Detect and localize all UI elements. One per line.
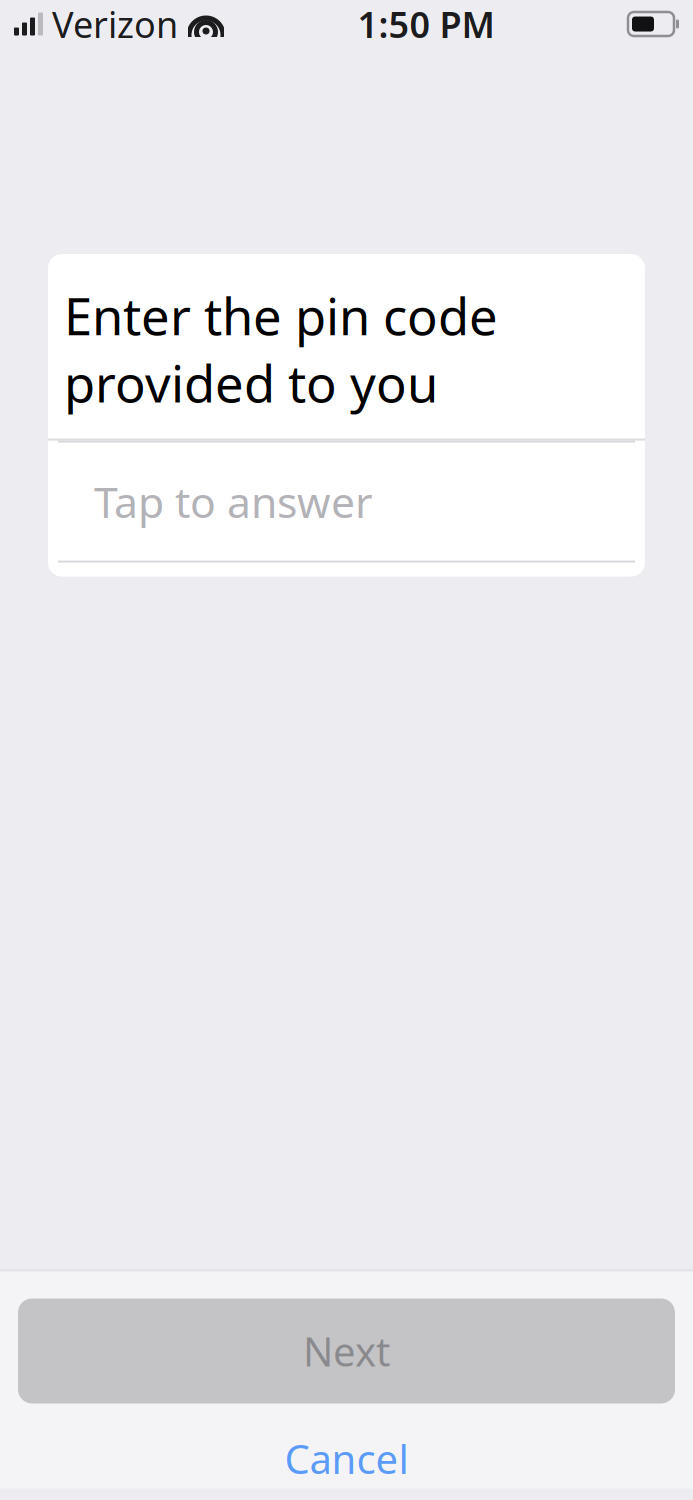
button[interactable]: Cancel [0, 1428, 693, 1488]
staticText: Cancel [284, 1432, 408, 1485]
staticText: 1:50 PM [357, 0, 494, 48]
staticText: Enter the pin code provided to you [64, 282, 498, 417]
button[interactable]: Next [18, 1298, 675, 1403]
staticText: Tap to answer [94, 473, 373, 530]
staticText: Verizon [52, 0, 178, 48]
staticText: Next [303, 1324, 390, 1377]
button[interactable]: Tap to answer [58, 443, 635, 561]
